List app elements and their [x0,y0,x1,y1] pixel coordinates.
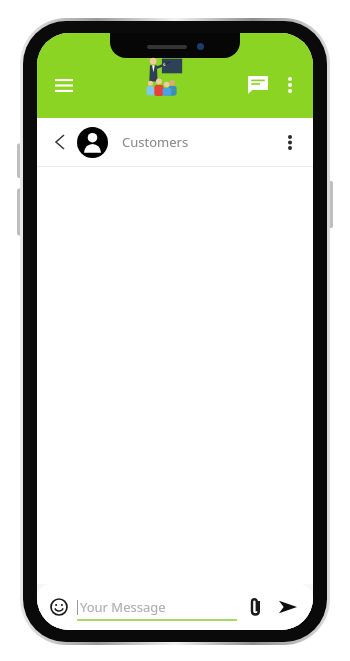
button[interactable]: Send message [275,594,301,620]
button[interactable]: Your Message [77,584,237,630]
button[interactable]: Back [47,129,73,155]
staticText: Your Message [80,598,166,616]
button[interactable]: Insert emoji [47,595,71,619]
button[interactable]: Customer avatar [77,127,108,158]
button[interactable]: Customers [122,133,277,151]
button[interactable]: App logo [138,54,184,100]
button[interactable]: Attach file [243,595,267,619]
button[interactable]: More options [277,72,303,98]
button[interactable]: Messages [243,70,273,100]
button[interactable]: Menu [49,70,79,100]
button[interactable]: More options [277,129,303,155]
